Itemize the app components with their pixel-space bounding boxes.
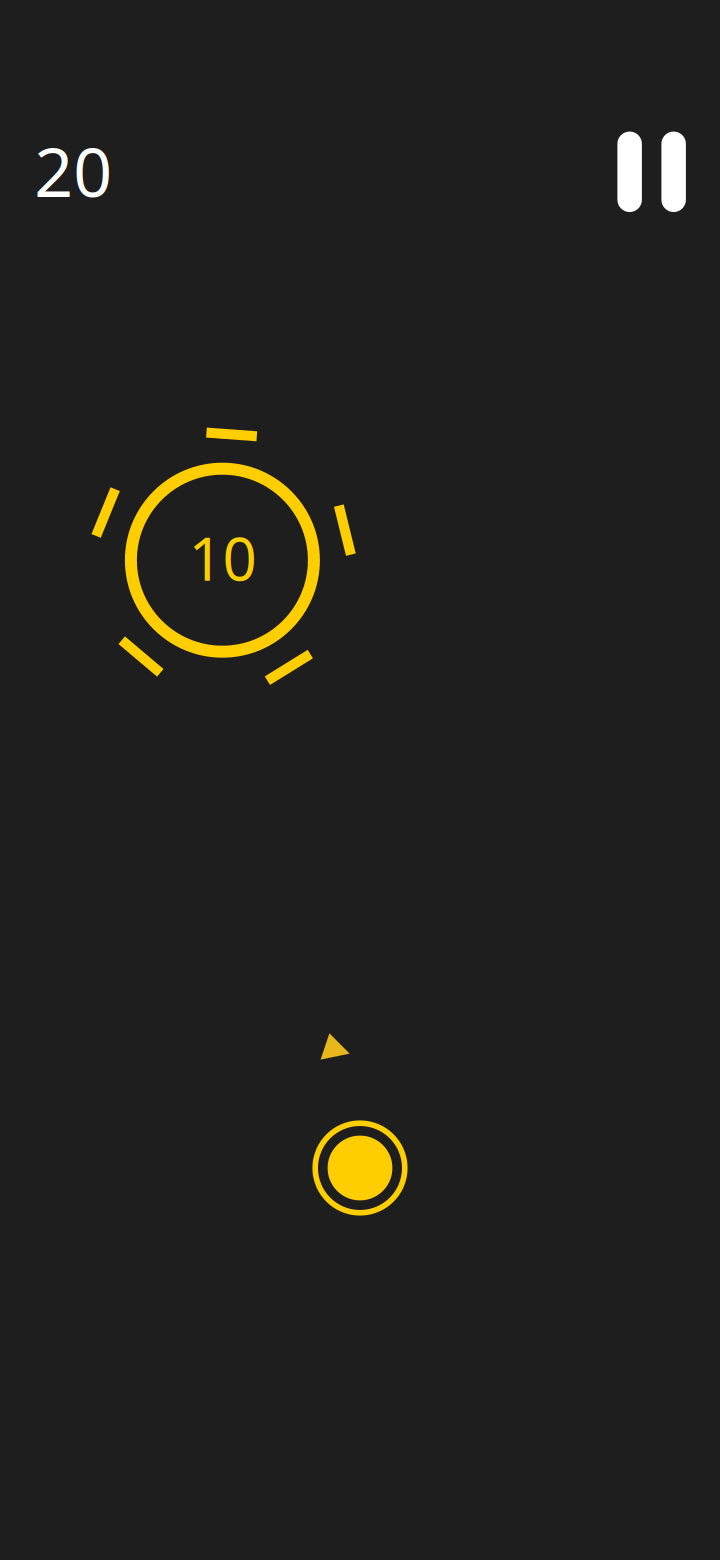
staticText: 20 [34, 125, 112, 216]
button[interactable]: Pause [603, 118, 700, 226]
staticText: 10 [189, 518, 257, 597]
